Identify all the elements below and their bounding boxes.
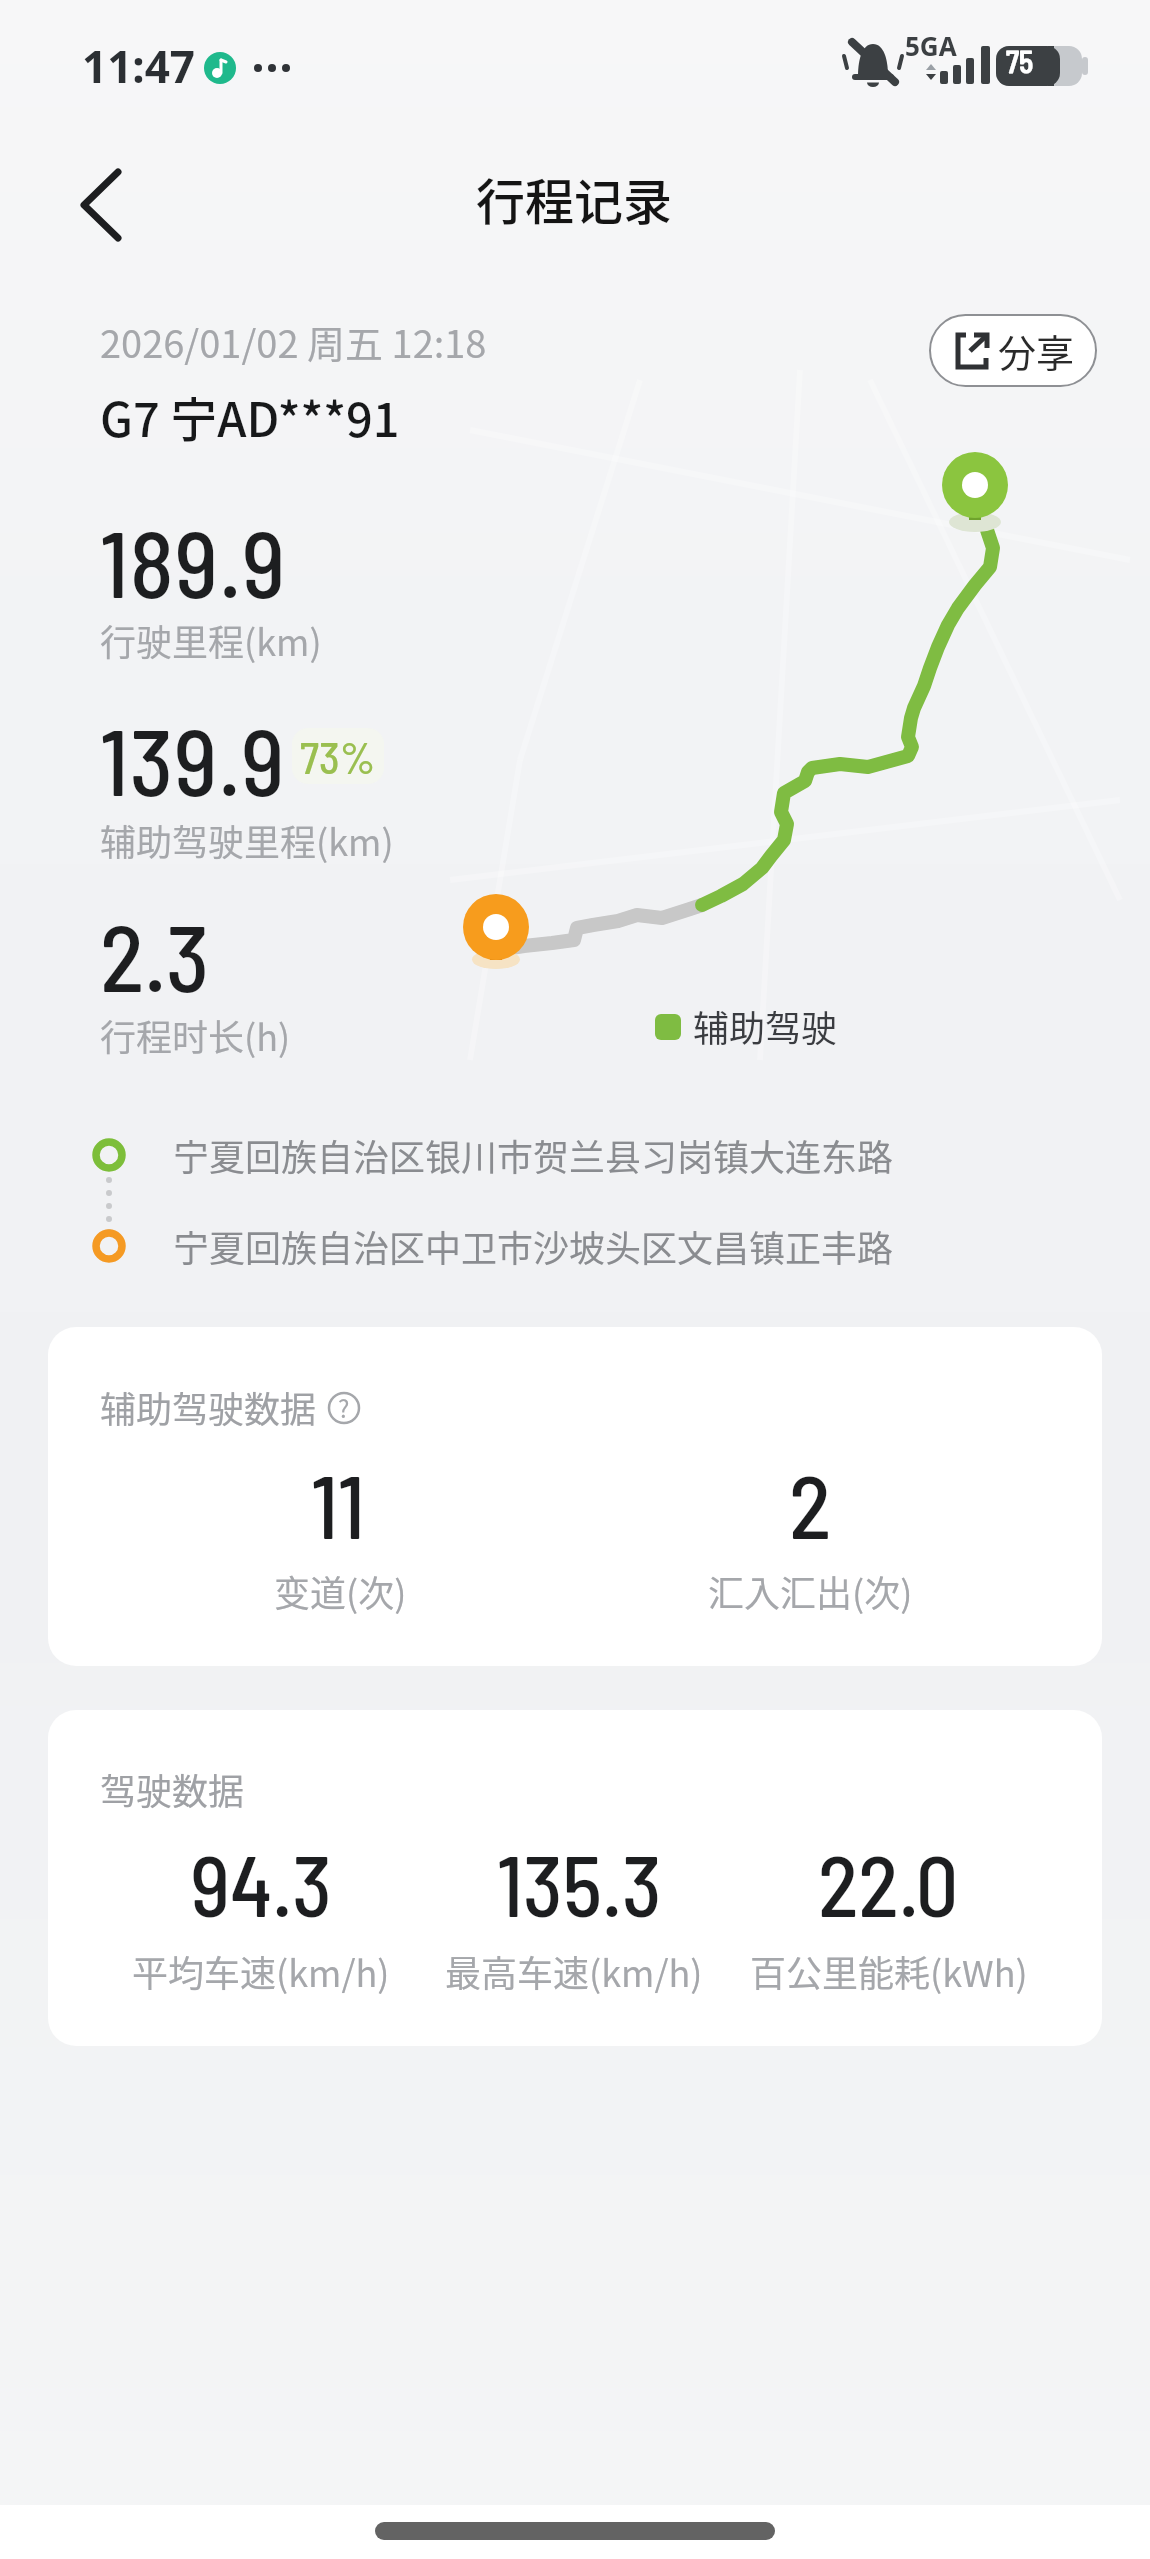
staticText: 宁夏回族自治区中卫市沙坡头区文昌镇正丰路 <box>173 1220 894 1272</box>
staticText: 汇入汇出(次) <box>708 1565 913 1617</box>
staticText: ? <box>338 1390 350 1425</box>
staticText: 11:47 <box>82 36 196 96</box>
staticText: 分享 <box>998 323 1075 378</box>
staticText: 11 <box>311 1451 365 1557</box>
staticText: 平均车速(km/h) <box>132 1945 390 1997</box>
staticText: 22.0 <box>818 1833 959 1934</box>
staticText: 驾驶数据 <box>100 1763 245 1815</box>
staticText: 2026/01/02 周五 12:18 <box>100 314 487 369</box>
staticText: 135.3 <box>497 1833 662 1934</box>
staticText: 最高车速(km/h) <box>445 1945 703 1997</box>
staticText: 73% <box>300 730 376 783</box>
staticText: 2 <box>789 1451 832 1557</box>
staticText: 变道(次) <box>274 1565 407 1617</box>
staticText: G7 宁AD***91 <box>100 382 400 450</box>
staticText: 94.3 <box>191 1833 332 1934</box>
staticText: 189.9 <box>100 506 287 616</box>
staticText: 行程记录 <box>476 163 673 234</box>
staticText: 辅助驾驶 <box>693 1000 838 1052</box>
staticText: 5GA <box>905 28 957 63</box>
button[interactable]: 分享 <box>929 314 1097 387</box>
button[interactable] <box>55 155 155 255</box>
staticText: 139.9 <box>100 704 286 814</box>
staticText: 行程时长(h) <box>100 1009 291 1061</box>
staticText: 百公里能耗(kWh) <box>750 1945 1028 1997</box>
staticText: 2.3 <box>100 900 210 1010</box>
staticText: 行驶里程(km) <box>100 614 322 666</box>
staticText: 辅助驾驶里程(km) <box>100 814 394 866</box>
staticText: 75 <box>1006 43 1034 79</box>
staticText: 辅助驾驶数据 <box>100 1381 317 1433</box>
staticText: 宁夏回族自治区银川市贺兰县习岗镇大连东路 <box>173 1129 894 1181</box>
